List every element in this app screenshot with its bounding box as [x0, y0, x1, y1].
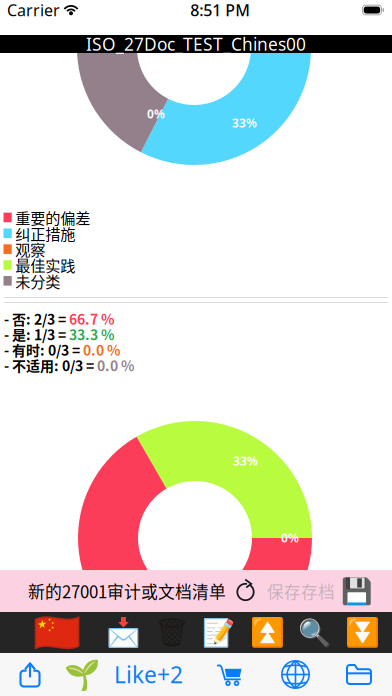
- staticText: 💾: [341, 576, 373, 605]
- staticText: 重要的偏差: [15, 206, 90, 228]
- staticText: 0%: [281, 530, 299, 546]
- staticText: 📝: [201, 617, 234, 648]
- button[interactable]: Delete: [150, 612, 194, 653]
- staticText: 新的27001审计或文档清单: [28, 579, 226, 603]
- staticText: 33.3 %: [69, 324, 114, 344]
- button[interactable]: Like+2: [113, 653, 183, 696]
- staticText: ⏬: [344, 616, 379, 648]
- button[interactable]: Edit: [196, 612, 240, 653]
- button[interactable]: Inbox: [102, 612, 146, 653]
- staticText: 0.0 %: [83, 340, 120, 360]
- staticText: 66.7 %: [69, 309, 114, 329]
- staticText: 33%: [233, 453, 258, 469]
- button[interactable]: Move down: [340, 612, 384, 653]
- staticText: 🗑: [154, 616, 190, 648]
- staticText: ISO_27Doc_TEST_Chines00: [86, 32, 306, 55]
- staticText: - 否: 2/3 =: [4, 309, 69, 329]
- staticText: 8:51 PM: [190, 0, 250, 21]
- staticText: 🇨🇳: [33, 610, 81, 655]
- staticText: 🌱: [63, 658, 100, 691]
- staticText: 纠正措施: [15, 222, 75, 244]
- button[interactable]: Share: [8, 653, 52, 696]
- staticText: 未分类: [15, 270, 60, 292]
- button[interactable]: Files: [337, 653, 381, 696]
- button[interactable]: Language: [35, 612, 79, 653]
- button[interactable]: Globe: [273, 653, 317, 696]
- staticText: 观察: [15, 238, 45, 260]
- staticText: ⏫: [249, 616, 284, 648]
- staticText: 📩: [106, 616, 141, 648]
- staticText: Like+2: [114, 659, 183, 689]
- staticText: 保存存档: [267, 579, 335, 603]
- button[interactable]: Move up: [245, 612, 289, 653]
- button[interactable]: Plant: [60, 653, 104, 696]
- button[interactable]: Cart: [207, 653, 251, 696]
- button[interactable]: Search: [292, 612, 336, 653]
- staticText: 33%: [232, 115, 257, 131]
- staticText: 最佳实践: [15, 254, 75, 276]
- staticText: 0%: [147, 106, 165, 122]
- staticText: 🔍: [297, 617, 330, 648]
- staticText: - 有时: 0/3 =: [4, 340, 83, 360]
- staticText: 0.0 %: [97, 355, 134, 375]
- staticText: - 不适用: 0/3 =: [4, 355, 97, 375]
- staticText: - 是: 1/3 =: [4, 324, 69, 344]
- staticText: Carrier: [7, 0, 60, 21]
